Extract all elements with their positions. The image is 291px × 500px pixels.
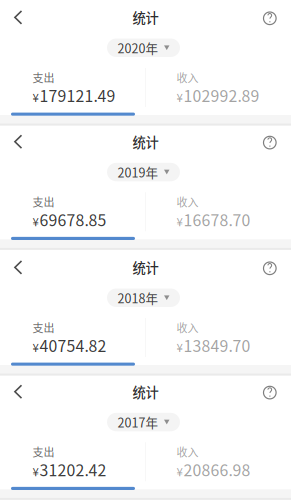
staticText: 统计 [132,258,158,277]
button[interactable]: 2017年 [107,413,180,431]
button[interactable]: 2020年 [107,38,180,57]
button[interactable]: Help [255,3,285,33]
staticText: ¥ 102992.89 [177,84,260,106]
staticText: ¥ 31202.42 [32,458,106,480]
button[interactable]: 收入 [177,69,260,96]
button[interactable]: Back [3,2,33,32]
button[interactable]: Back [3,252,33,282]
button[interactable]: Help [255,128,285,158]
staticText: 统计 [132,382,158,401]
staticText: 2020年 [117,39,158,57]
staticText: 收入 [177,69,199,85]
staticText: 收入 [177,319,199,335]
staticText: 支出 [32,194,54,210]
button[interactable]: Back [3,377,33,407]
button[interactable]: 支出 [32,69,115,96]
button[interactable]: Help [255,378,285,408]
staticText: 2017年 [117,413,158,431]
staticText: 支出 [32,444,54,460]
staticText: 2018年 [117,289,158,307]
staticText: ¥ 179121.49 [32,84,115,106]
staticText: 支出 [32,319,54,335]
staticText: 支出 [32,69,54,85]
staticText: 统计 [132,132,158,151]
button[interactable]: 2019年 [107,163,180,181]
staticText: 收入 [177,194,199,210]
staticText: 收入 [177,444,199,460]
staticText: 2019年 [117,163,158,181]
staticText: ¥ 20866.98 [177,458,251,480]
staticText: ¥ 40754.82 [32,334,106,356]
button[interactable]: 支出 [32,444,106,471]
button[interactable]: 支出 [32,194,106,221]
button[interactable]: 收入 [177,194,251,221]
button[interactable]: 收入 [177,444,251,471]
button[interactable]: Back [3,127,33,157]
button[interactable]: 收入 [177,319,251,346]
staticText: ¥ 69678.85 [32,208,106,230]
button[interactable]: 支出 [32,319,106,346]
staticText: 统计 [132,8,158,27]
staticText: ¥ 16678.70 [177,208,251,230]
button[interactable]: Help [255,253,285,283]
button[interactable]: 2018年 [107,288,180,307]
staticText: ¥ 13849.70 [177,334,251,356]
